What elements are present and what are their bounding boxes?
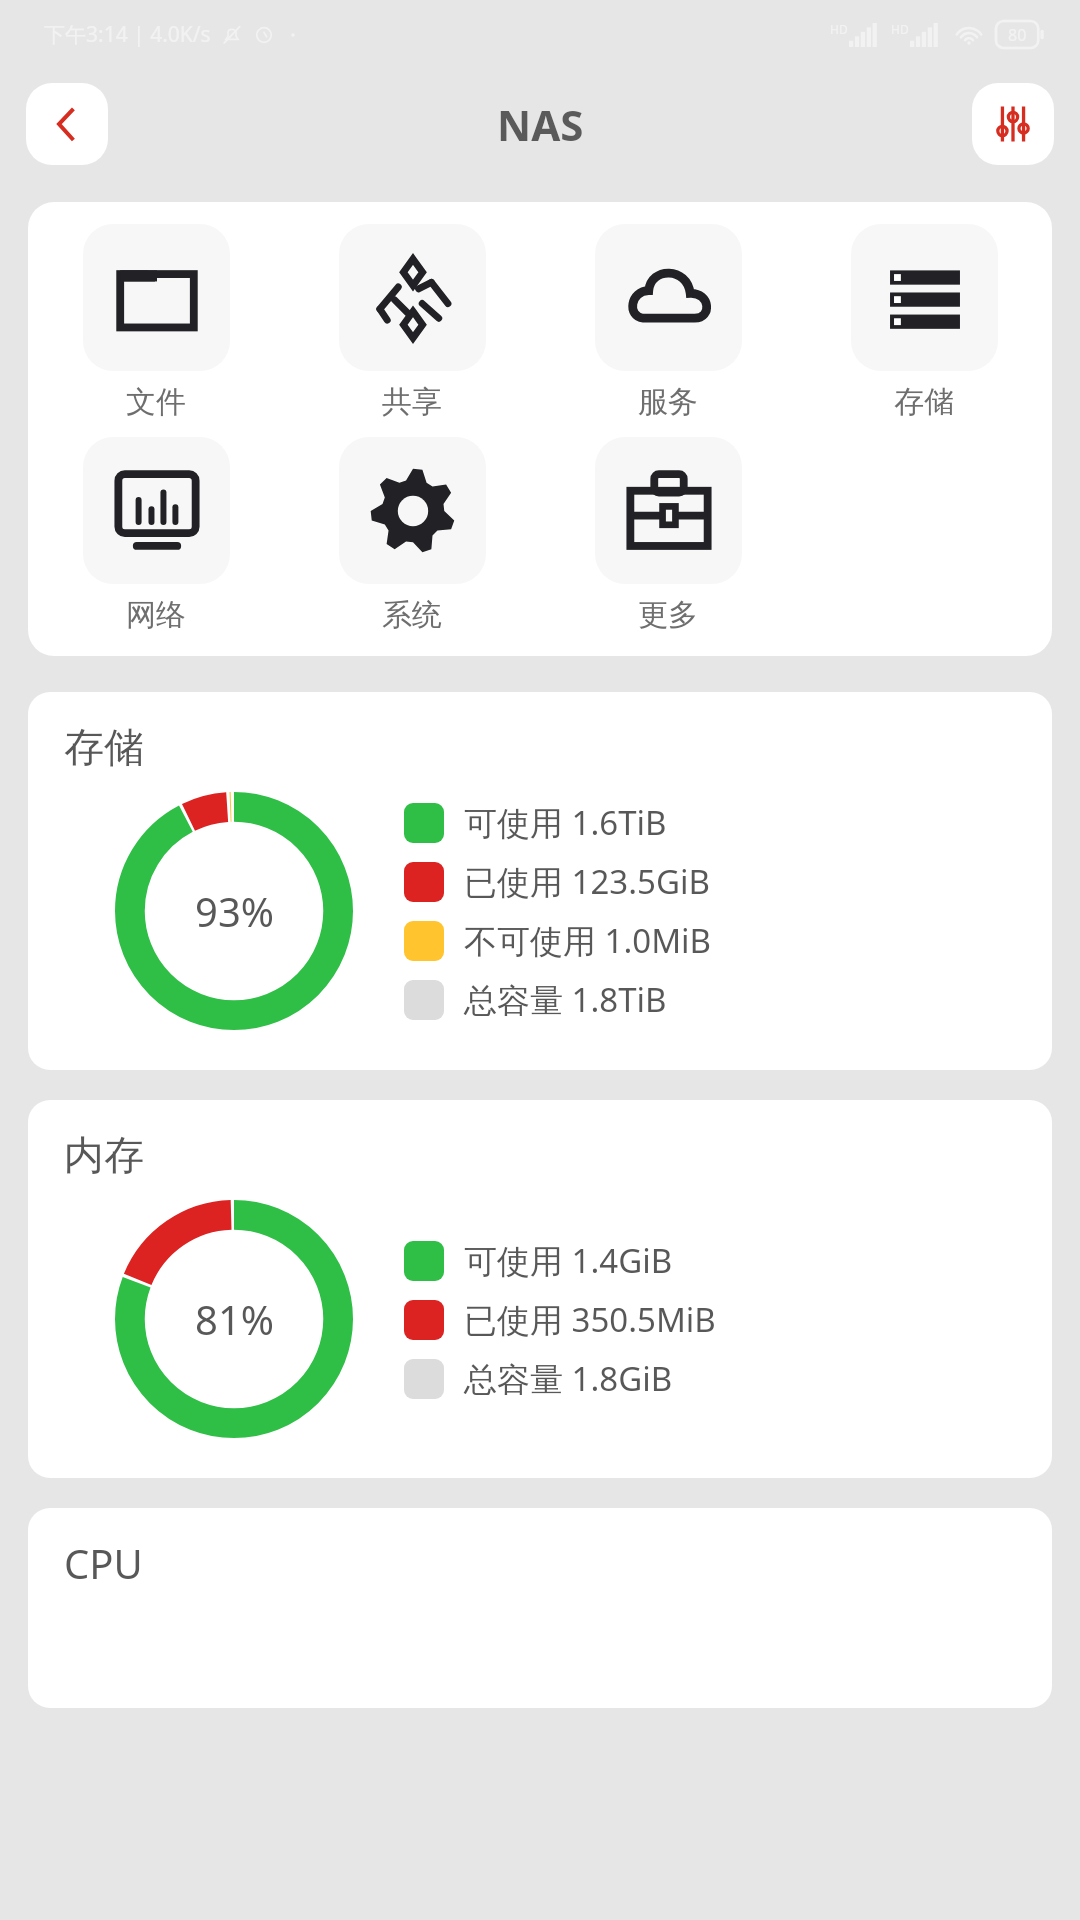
button[interactable]: 系统 [284,431,540,640]
button[interactable]: 服务 [540,218,796,427]
staticText: 总容量 1.8GiB [464,1356,673,1401]
staticText: 总容量 1.8TiB [464,977,667,1022]
staticText: HD [830,21,848,37]
staticText: 80 [1008,24,1027,46]
staticText: 可使用 1.6TiB [464,800,667,845]
staticText: 文件 [126,383,186,421]
staticText: CPU [64,1536,143,1590]
staticText: 不可使用 1.0MiB [464,918,712,963]
button[interactable]: 存储 [28,692,1052,1070]
button[interactable]: CPU [28,1508,1052,1708]
button[interactable]: 更多 [540,431,796,640]
staticText: 共享 [382,383,442,421]
staticText: 服务 [638,383,698,421]
staticText: 存储 [64,722,144,772]
staticText: 已使用 350.5MiB [464,1297,716,1342]
staticText: 网络 [126,596,186,634]
staticText: 可使用 1.4GiB [464,1238,673,1283]
staticText: 存储 [894,383,954,421]
staticText: 更多 [638,596,698,634]
button[interactable]: 网络 [28,431,284,640]
staticText: HD [891,21,909,37]
staticText: 内存 [64,1130,144,1180]
button[interactable]: 文件 [28,218,284,427]
button[interactable]: 共享 [284,218,540,427]
button[interactable]: 内存 [28,1100,1052,1478]
staticText: 已使用 123.5GiB [464,859,710,904]
button[interactable]: 存储 [796,218,1052,427]
staticText: 系统 [382,596,442,634]
staticText: 81% [195,1292,274,1346]
button[interactable]: Back [26,83,108,165]
staticText: NAS [497,96,584,153]
staticText: 93% [195,884,274,938]
staticText: 下午3:14 | 4.0K/s [44,20,211,49]
button[interactable]: Settings [972,83,1054,165]
